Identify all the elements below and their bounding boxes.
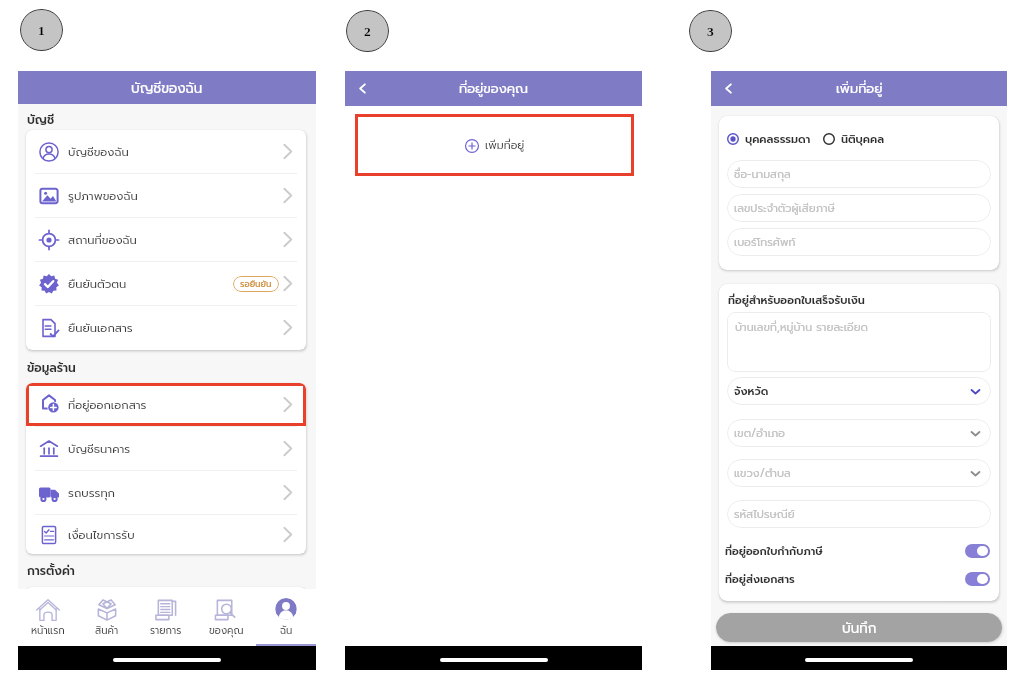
button[interactable]: เบอร์โทรศัพท์ <box>727 228 991 256</box>
button[interactable]: Back <box>715 71 741 106</box>
staticText: หน้าแรก <box>31 623 65 638</box>
staticText: นิติบุคคล <box>841 131 885 148</box>
staticText: เพิ่มที่อยู่ <box>836 79 883 99</box>
staticText: รหัสไปรษณีย์ <box>734 506 795 523</box>
staticText: สถานที่ของฉัน <box>68 231 137 248</box>
staticText: แขวง/ตำบล <box>734 465 791 482</box>
button[interactable]: บุคคลธรรมดา <box>727 133 739 145</box>
staticText: จังหวัด <box>734 383 769 400</box>
button[interactable]: ยืนยันตัวตน <box>26 262 306 305</box>
staticText: บัญชี <box>27 111 55 129</box>
button[interactable]: ยืนยันเอกสาร <box>26 306 306 349</box>
button[interactable]: ที่อยู่ออกเอกสาร <box>26 383 306 426</box>
button[interactable]: เลขประจำตัวผู้เสียภาษี <box>727 194 991 222</box>
button[interactable]: รายการ <box>136 589 196 646</box>
button[interactable]: บัญชีธนาคาร <box>26 427 306 470</box>
staticText: เพิ่มที่อยู่ <box>485 137 525 154</box>
staticText: ที่อยู่สำหรับออกใบเสร็จรับเงิน <box>728 292 865 309</box>
staticText: รูปภาพของฉัน <box>68 187 138 204</box>
staticText: ที่อยู่ออกเอกสาร <box>68 396 147 413</box>
staticText: บัญชีของฉัน <box>68 143 129 160</box>
button[interactable]: รูปภาพของฉัน <box>26 174 306 217</box>
button[interactable]: แขวง/ตำบล <box>727 459 991 487</box>
button[interactable]: บันทึก <box>716 613 1002 642</box>
button[interactable]: นิติบุคคล <box>823 133 835 145</box>
staticText: 3 <box>707 24 714 39</box>
button[interactable]: ที่อยู่ส่งเอกสาร <box>965 572 990 586</box>
staticText: การตั้งค่า <box>27 562 75 580</box>
staticText: เบอร์โทรศัพท์ <box>734 234 796 251</box>
button[interactable]: บ้านเลขที่,หมู่บ้าน รายละเอียด <box>727 312 991 372</box>
staticText: ของคุณ <box>209 623 244 638</box>
staticText: ที่อยู่ส่งเอกสาร <box>725 571 795 588</box>
staticText: เลขประจำตัวผู้เสียภาษี <box>734 200 835 217</box>
staticText: สินค้า <box>95 623 119 638</box>
staticText: รถบรรทุก <box>68 484 115 501</box>
staticText: ที่อยู่ของคุณ <box>459 79 529 99</box>
staticText: 2 <box>364 24 371 39</box>
staticText: ชื่อ-นามสกุล <box>734 166 791 183</box>
button[interactable]: ของคุณ <box>196 589 256 646</box>
button[interactable]: สถานที่ของฉัน <box>26 218 306 261</box>
staticText: ฉัน <box>280 623 293 638</box>
staticText: ที่อยู่ออกใบกำกับภาษี <box>725 543 823 560</box>
staticText: ยืนยันตัวตน <box>68 275 127 292</box>
staticText: รอยืนยัน <box>240 278 272 291</box>
staticText: บ้านเลขที่,หมู่บ้าน รายละเอียด <box>735 319 869 336</box>
button[interactable]: เขต/อำเภอ <box>727 419 991 447</box>
button[interactable]: เพิ่มที่อยู่ <box>355 114 634 176</box>
button[interactable]: หน้าแรก <box>18 589 77 646</box>
staticText: บัญชีของฉัน <box>131 78 203 98</box>
staticText: บันทึก <box>842 618 877 638</box>
button[interactable]: รถบรรทุก <box>26 471 306 514</box>
staticText: รายการ <box>150 623 182 638</box>
staticText: บุคคลธรรมดา <box>745 131 811 148</box>
button[interactable]: เงื่อนไขการรับ <box>26 515 306 554</box>
button[interactable]: บัญชีของฉัน <box>26 130 306 173</box>
staticText: ข้อมูลร้าน <box>27 359 76 377</box>
button[interactable]: สินค้า <box>77 589 136 646</box>
staticText: ยืนยันเอกสาร <box>68 319 133 336</box>
button[interactable]: Back <box>349 71 375 106</box>
button[interactable]: จังหวัด <box>727 377 991 405</box>
button[interactable]: รหัสไปรษณีย์ <box>727 500 991 528</box>
staticText: บัญชีธนาคาร <box>68 440 131 457</box>
button[interactable]: ฉัน <box>256 589 316 646</box>
staticText: เงื่อนไขการรับ <box>68 526 135 543</box>
button[interactable]: ชื่อ-นามสกุล <box>727 160 991 188</box>
staticText: เขต/อำเภอ <box>734 425 785 442</box>
button[interactable]: ที่อยู่ออกใบกำกับภาษี <box>965 544 990 558</box>
staticText: 1 <box>38 23 45 38</box>
